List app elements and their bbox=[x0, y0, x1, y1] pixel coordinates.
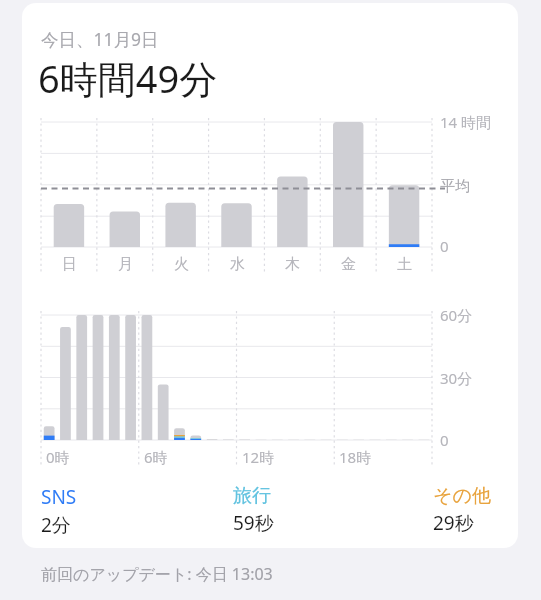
other: Screen time charts bbox=[0, 0, 541, 600]
staticText: 水 bbox=[230, 255, 245, 274]
button[interactable]: SNS bbox=[41, 484, 77, 538]
staticText: 12時 bbox=[242, 447, 275, 467]
staticText: 火 bbox=[174, 255, 189, 274]
button[interactable] bbox=[22, 3, 518, 548]
staticText: 土 bbox=[397, 255, 412, 274]
staticText: 0 bbox=[440, 430, 449, 450]
staticText: 今日、11月9日 bbox=[41, 27, 159, 51]
staticText: 14 時間 bbox=[440, 112, 492, 132]
staticText: 木 bbox=[285, 255, 300, 274]
staticText: 金 bbox=[341, 255, 356, 274]
staticText: 6時間49分 bbox=[38, 52, 218, 104]
staticText: 59秒 bbox=[233, 510, 274, 536]
staticText: 月 bbox=[118, 255, 133, 274]
button[interactable]: その他 bbox=[433, 484, 491, 536]
staticText: 0時 bbox=[46, 447, 70, 467]
staticText: 平均 bbox=[440, 177, 470, 196]
staticText: 0 bbox=[440, 236, 449, 256]
button[interactable]: 前回のアップデート: 今日 13:03 bbox=[41, 563, 273, 585]
staticText: SNS bbox=[41, 484, 77, 510]
staticText: 2分 bbox=[41, 512, 71, 538]
button[interactable]: 旅行 bbox=[233, 484, 274, 536]
staticText: 30分 bbox=[440, 368, 473, 388]
staticText: 日 bbox=[62, 255, 77, 274]
staticText: 6時 bbox=[144, 447, 168, 467]
staticText: その他 bbox=[433, 484, 491, 508]
staticText: 旅行 bbox=[233, 484, 271, 508]
staticText: 前回のアップデート: 今日 13:03 bbox=[41, 563, 273, 585]
staticText: 29秒 bbox=[433, 510, 474, 536]
staticText: 18時 bbox=[339, 447, 372, 467]
staticText: 60分 bbox=[440, 305, 473, 325]
